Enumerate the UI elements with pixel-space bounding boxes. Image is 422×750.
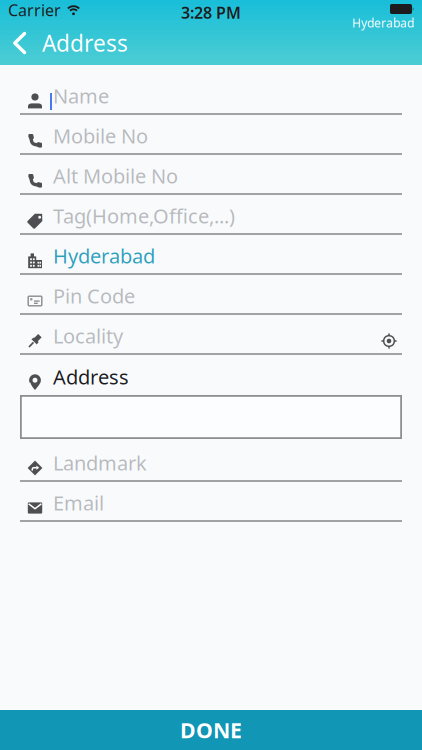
staticText: Carrier	[8, 0, 61, 21]
staticText: Mobile No	[53, 122, 148, 149]
button[interactable]: Use current location	[381, 333, 402, 349]
staticText: Alt Mobile No	[53, 162, 178, 189]
button[interactable]: Back	[0, 32, 26, 54]
staticText: Name	[53, 82, 109, 109]
button[interactable]: Hyderabad	[0, 235, 422, 275]
staticText: Pin Code	[53, 282, 135, 309]
staticText: Address	[53, 363, 129, 390]
staticText: Hyderabad	[352, 15, 414, 31]
staticText: Address	[42, 28, 128, 58]
staticText: Locality	[53, 322, 123, 349]
staticText: Tag(Home,Office,...)	[53, 202, 235, 229]
staticText: DONE	[180, 716, 242, 744]
staticText: Landmark	[53, 449, 147, 476]
button[interactable]: DONE	[0, 710, 422, 750]
staticText: 3:28 PM	[181, 2, 241, 23]
staticText: Email	[53, 489, 104, 516]
staticText: Hyderabad	[53, 242, 155, 269]
